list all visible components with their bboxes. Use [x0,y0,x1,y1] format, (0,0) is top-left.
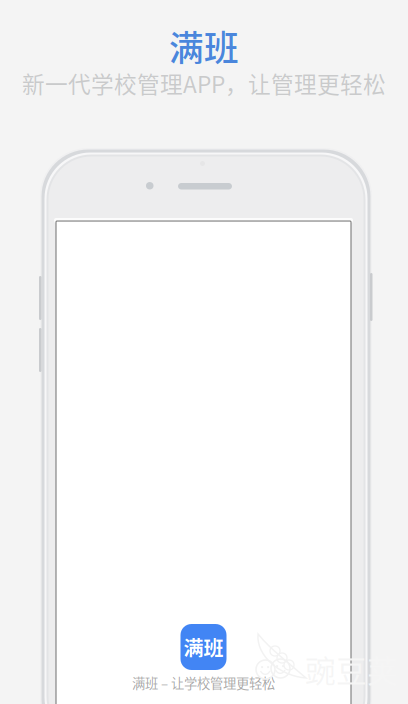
staticText: 满班 [183,632,223,661]
staticText: 豌豆荚 [305,647,398,691]
staticText: 满班 – 让学校管理更轻松 [132,673,275,692]
button[interactable]: 满班 [56,624,351,702]
staticText: 新一代学校管理APP，让管理更轻松 [22,67,386,99]
staticText: 满班 [169,21,239,71]
